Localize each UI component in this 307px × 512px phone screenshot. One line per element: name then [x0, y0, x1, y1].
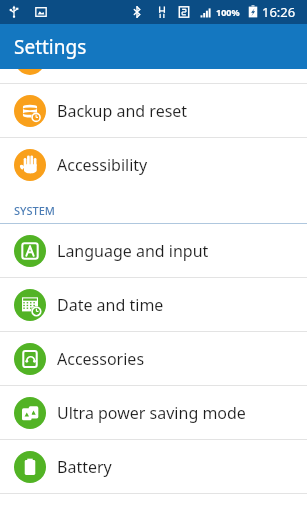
staticText: 100%	[216, 6, 240, 18]
button[interactable]: Backup and reset	[0, 84, 307, 137]
button[interactable]: Battery	[0, 440, 307, 493]
button[interactable]: Accessibility	[0, 138, 307, 191]
staticText: 16:26	[262, 3, 296, 21]
button[interactable]: Previous setting	[0, 69, 307, 83]
staticText: SYSTEM	[14, 203, 55, 218]
staticText: Date and time	[57, 294, 164, 316]
button[interactable]: Ultra power saving mode	[0, 386, 307, 439]
staticText: Language and input	[57, 240, 209, 262]
staticText: Backup and reset	[57, 100, 188, 122]
staticText: Accessibility	[57, 154, 148, 176]
button[interactable]: Language and input	[0, 224, 307, 277]
button[interactable]: Date and time	[0, 278, 307, 331]
staticText: Battery	[57, 456, 112, 478]
staticText: Accessories	[57, 348, 145, 370]
staticText: Ultra power saving mode	[57, 402, 246, 424]
button[interactable]: Accessories	[0, 332, 307, 385]
staticText: Settings	[14, 34, 87, 60]
